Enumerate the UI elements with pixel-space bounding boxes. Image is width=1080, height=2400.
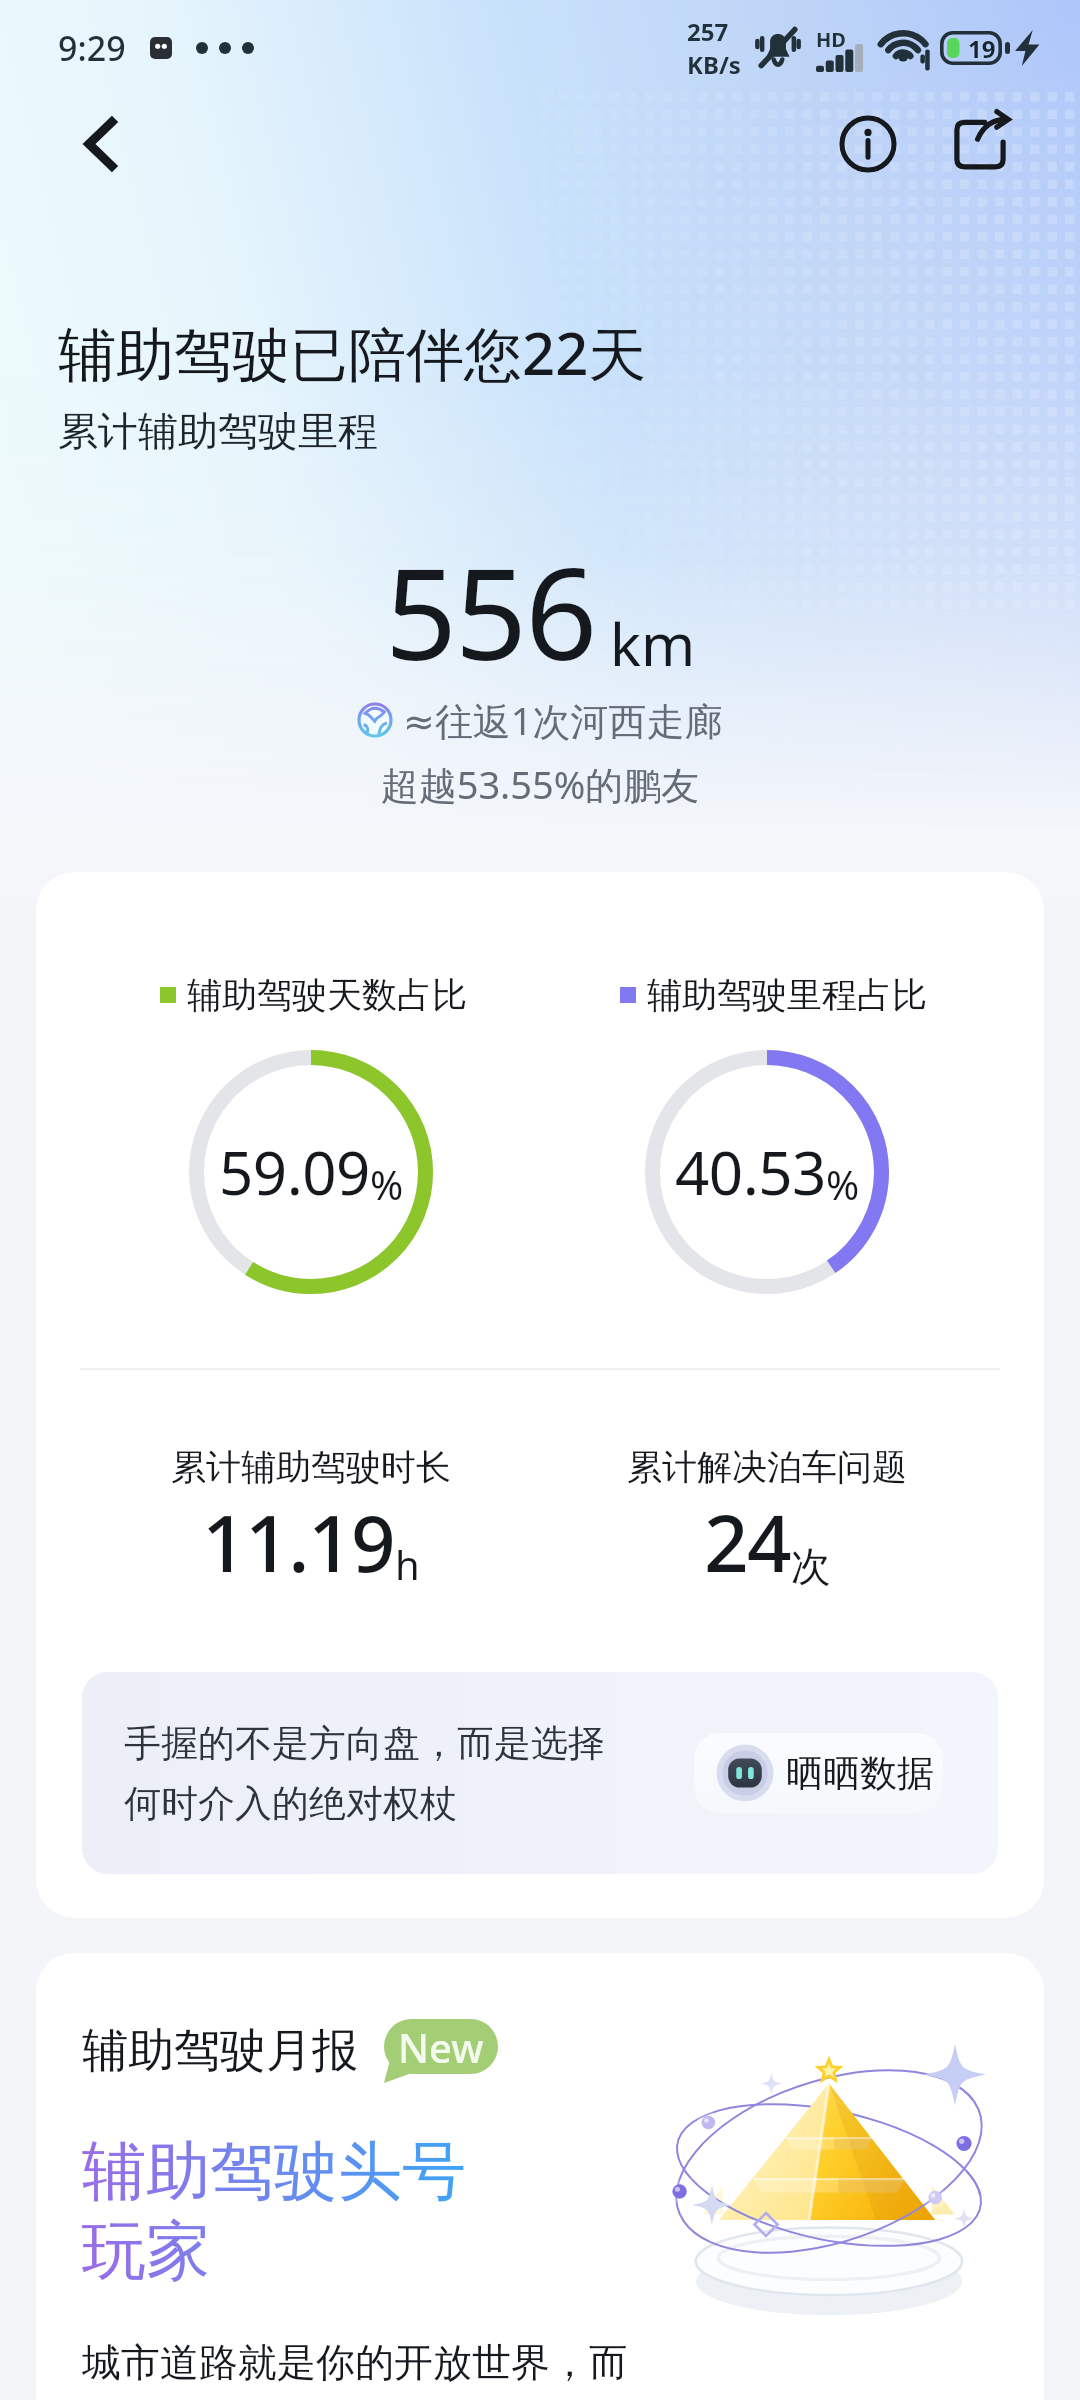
staticText: HD	[816, 26, 846, 53]
staticText: ≈往返1次河西走廊	[403, 694, 723, 746]
button[interactable]: Share	[944, 108, 1016, 180]
staticText: 何时介入的绝对权杖	[124, 1780, 457, 1827]
button[interactable]: 辅助驾驶月报	[36, 1953, 1044, 2400]
staticText: 辅助驾驶天数占比	[187, 973, 467, 1017]
staticText: 手握的不是方向盘，而是选择	[124, 1720, 605, 1767]
staticText: 9:29	[58, 25, 126, 71]
staticText: 40.53	[675, 1131, 826, 1213]
staticText: 累计辅助驾驶里程	[58, 406, 378, 456]
staticText: 辅助驾驶月报	[82, 2022, 358, 2080]
staticText: 辅助驾驶已陪伴您22天	[58, 313, 647, 392]
button[interactable]: 晒晒数据	[694, 1733, 943, 1813]
staticText: km	[610, 604, 696, 683]
staticText: 556	[385, 525, 596, 697]
staticText: h	[395, 1537, 420, 1591]
staticText: 超越53.55%的鹏友	[0, 758, 1080, 810]
staticText: 累计辅助驾驶时长	[171, 1445, 451, 1489]
staticText: 19	[968, 32, 996, 65]
staticText: 257	[687, 15, 729, 48]
staticText: 59.09	[219, 1131, 370, 1213]
staticText: %	[370, 1157, 404, 1211]
staticText: 次	[791, 1541, 831, 1591]
staticText: 辅助驾驶里程占比	[647, 973, 927, 1017]
staticText: %	[826, 1157, 860, 1211]
staticText: 累计解决泊车问题	[627, 1445, 907, 1489]
staticText: KB/s	[687, 48, 741, 81]
staticText: 11.19	[202, 1489, 395, 1595]
staticText: New	[398, 2020, 484, 2074]
staticText: 24	[704, 1489, 791, 1595]
staticText: 辅助驾驶头号 玩家	[82, 2131, 466, 2292]
staticText: 城市道路就是你的开放世界，而	[82, 2338, 628, 2387]
button[interactable]: Info	[832, 108, 904, 180]
staticText: 晒晒数据	[786, 1750, 934, 1797]
button[interactable]: Back	[69, 112, 133, 176]
